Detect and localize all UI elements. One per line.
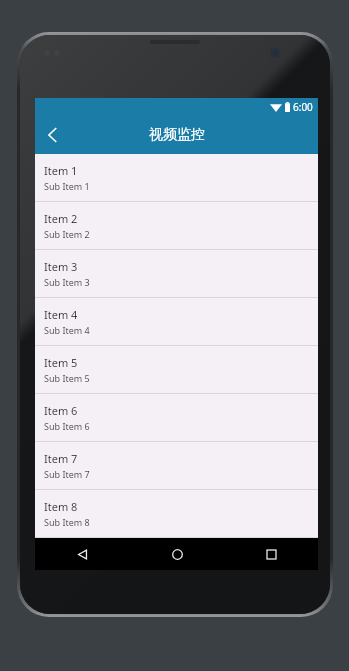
staticText: Sub Item 6 xyxy=(44,420,90,432)
staticText: Item 5 xyxy=(44,355,78,370)
staticText: Sub Item 4 xyxy=(44,324,90,336)
button[interactable]: Item 3 xyxy=(35,250,318,297)
staticText: Item 3 xyxy=(44,259,78,274)
staticText: Sub Item 1 xyxy=(44,180,90,192)
staticText: Item 6 xyxy=(44,403,78,418)
staticText: Sub Item 5 xyxy=(44,372,90,384)
staticText: 视频监控 xyxy=(149,126,205,144)
staticText: Sub Item 2 xyxy=(44,228,90,240)
button[interactable]: Back xyxy=(35,116,69,154)
button[interactable]: Item 1 xyxy=(35,154,318,201)
button[interactable]: Back xyxy=(35,538,130,570)
staticText: Sub Item 7 xyxy=(44,468,90,480)
button[interactable]: Item 8 xyxy=(35,490,318,537)
button[interactable]: Recents xyxy=(224,538,318,570)
staticText: 6:00 xyxy=(293,100,313,114)
staticText: Item 4 xyxy=(44,307,78,322)
button[interactable]: Item 5 xyxy=(35,346,318,393)
staticText: Item 1 xyxy=(44,163,78,178)
button[interactable]: Item 6 xyxy=(35,394,318,441)
staticText: Sub Item 3 xyxy=(44,276,90,288)
staticText: Item 7 xyxy=(44,451,78,466)
staticText: Item 8 xyxy=(44,499,78,514)
button[interactable]: Home xyxy=(130,538,224,570)
button[interactable]: Item 2 xyxy=(35,202,318,249)
staticText: Sub Item 8 xyxy=(44,516,90,528)
button[interactable]: Item 7 xyxy=(35,442,318,489)
button[interactable]: Item 4 xyxy=(35,298,318,345)
staticText: Item 2 xyxy=(44,211,78,226)
